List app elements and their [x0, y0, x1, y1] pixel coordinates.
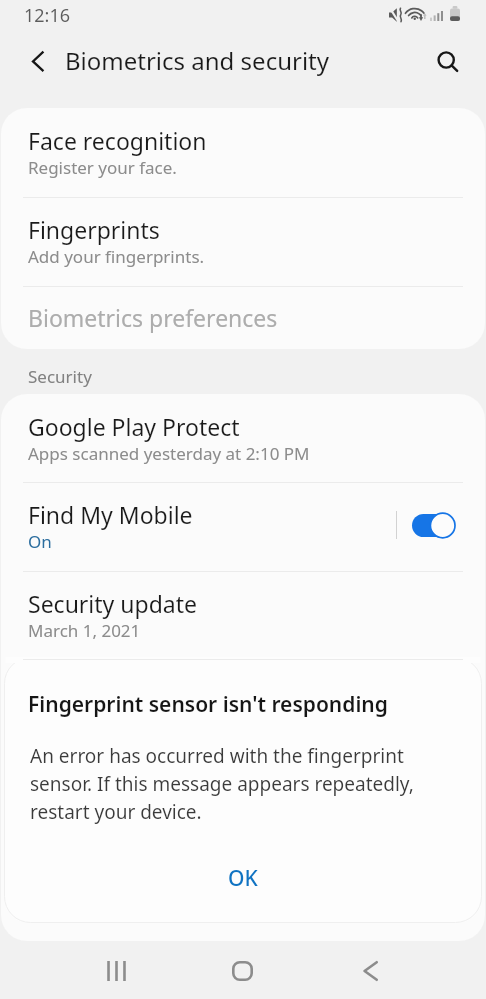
button[interactable]: Back — [362, 961, 378, 981]
staticText: On — [28, 530, 52, 553]
staticText: Add your fingerprints. — [28, 245, 205, 268]
button[interactable]: Navigate up — [22, 43, 54, 75]
button[interactable]: Home — [232, 961, 253, 981]
staticText: OK — [228, 864, 258, 893]
staticText: An error has occurred with the fingerpri… — [30, 743, 442, 825]
button[interactable]: Find My Mobile, on — [411, 512, 456, 539]
staticText: Security update — [28, 588, 197, 619]
staticText: 12:16 — [24, 3, 71, 28]
staticText: Google Play Protect — [28, 411, 240, 442]
button[interactable]: Fingerprints — [1, 197, 485, 286]
staticText: Register your face. — [28, 156, 177, 179]
staticText: March 1, 2021 — [28, 619, 141, 642]
button[interactable]: Find My Mobile — [1, 482, 485, 571]
button[interactable]: Security update — [1, 571, 485, 659]
button[interactable]: Face recognition — [1, 108, 485, 197]
staticText: Security — [28, 365, 92, 388]
staticText: Biometrics and security — [65, 44, 329, 77]
staticText: Fingerprints — [28, 214, 160, 245]
staticText: Biometrics preferences — [28, 302, 278, 333]
staticText: Find My Mobile — [28, 499, 193, 530]
staticText: Fingerprint sensor isn't responding — [28, 690, 388, 719]
button[interactable]: OK — [186, 855, 300, 901]
button[interactable]: Google Play Protect — [1, 394, 485, 482]
staticText: Apps scanned yesterday at 2:10 PM — [28, 442, 310, 465]
staticText: Face recognition — [28, 125, 207, 156]
button[interactable]: Biometrics preferences — [1, 286, 485, 349]
button[interactable]: Recent apps — [106, 961, 127, 981]
button[interactable]: Search — [430, 44, 462, 76]
